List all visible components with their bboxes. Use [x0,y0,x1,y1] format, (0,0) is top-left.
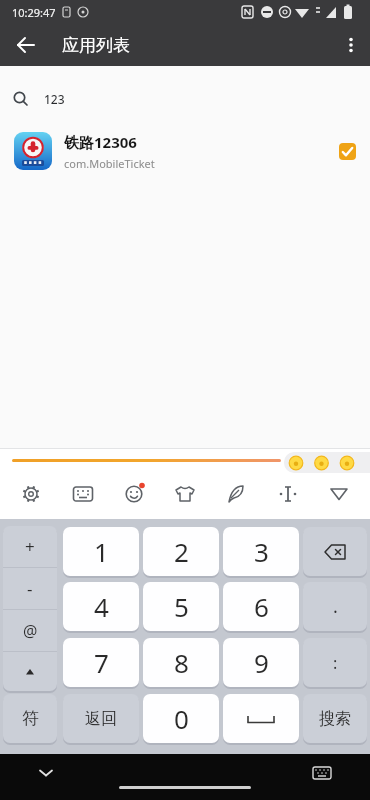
button[interactable]: 7 [63,638,139,687]
button[interactable]: - [3,568,57,609]
staticText: com.MobileTicket [64,156,155,171]
button[interactable]: . [303,582,367,631]
button[interactable]: 铁路12306 [0,126,370,176]
staticText: @ [23,620,38,642]
button[interactable]: 0 [143,694,219,743]
button[interactable]: @ [3,610,57,651]
staticText: 7 [94,645,109,680]
button[interactable] [30,761,62,793]
button[interactable] [303,527,367,576]
button[interactable] [3,652,57,691]
staticText: 1 [94,534,109,569]
button[interactable] [319,474,359,514]
button[interactable]: 1 [63,527,139,576]
button[interactable]: 符 [3,694,57,743]
button[interactable]: + [3,526,57,567]
button[interactable]: 5 [143,582,219,631]
staticText: 10:29:47 [12,5,56,20]
button[interactable]: 搜索 [303,694,367,743]
button[interactable] [63,474,103,514]
button[interactable]: 123 [0,80,370,118]
button[interactable] [11,474,51,514]
staticText: 123 [44,91,65,107]
button[interactable]: 4 [63,582,139,631]
button[interactable]: 6 [223,582,299,631]
button[interactable]: : [303,638,367,687]
staticText: : [333,652,338,674]
staticText: . [333,594,338,619]
button[interactable] [165,474,205,514]
staticText: - [27,577,33,600]
staticText: 5 [174,589,189,624]
button[interactable] [223,694,299,743]
staticText: + [25,535,35,558]
button[interactable] [114,474,154,514]
staticText: 搜索 [319,709,351,729]
staticText: 铁路12306 [64,132,137,152]
button[interactable] [268,474,308,514]
button[interactable]: 8 [143,638,219,687]
staticText: 4 [94,589,109,624]
staticText: 8 [174,645,189,680]
button[interactable]: 2 [143,527,219,576]
button[interactable]: 3 [223,527,299,576]
staticText: 3 [254,534,269,569]
button[interactable] [330,25,370,65]
button[interactable]: 9 [223,638,299,687]
staticText: 0 [174,701,189,736]
button[interactable] [10,28,44,62]
button[interactable] [339,143,356,160]
staticText: 应用列表 [62,35,130,56]
button[interactable] [216,474,256,514]
staticText: 9 [254,645,269,680]
staticText: 符 [22,708,39,729]
button[interactable] [308,763,336,791]
staticText: 返回 [85,709,117,729]
button[interactable]: 返回 [63,694,139,743]
staticText: 6 [254,589,269,624]
staticText: 2 [174,534,189,569]
